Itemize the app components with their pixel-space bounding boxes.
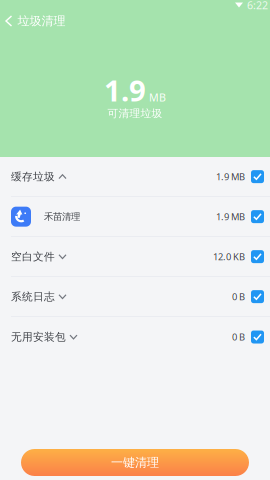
button[interactable]: 一键清理: [21, 449, 249, 476]
staticText: 垃圾清理: [17, 14, 65, 28]
staticText: 一键清理: [111, 455, 159, 470]
staticText: 可清理垃圾: [107, 107, 162, 120]
staticText: 1.9: [104, 70, 146, 109]
staticText: 1.9 MB: [216, 210, 245, 223]
staticText: 系统日志: [11, 290, 55, 303]
staticText: 空白文件: [11, 250, 55, 263]
staticText: 0 B: [232, 290, 245, 303]
button[interactable]: 垃圾清理: [0, 10, 74, 32]
staticText: 禾苗清理: [44, 211, 80, 222]
staticText: 1.9 MB: [216, 170, 245, 183]
button[interactable]: 禾苗清理: [0, 197, 270, 237]
button[interactable]: 无用安装包: [0, 317, 270, 357]
button[interactable]: 空白文件: [0, 237, 270, 277]
staticText: 0 B: [232, 331, 245, 343]
staticText: 无用安装包: [11, 330, 66, 343]
staticText: 缓存垃圾: [11, 170, 55, 183]
button[interactable]: 缓存垃圾: [0, 157, 270, 197]
button[interactable]: 系统日志: [0, 277, 270, 317]
staticText: MB: [149, 90, 166, 104]
staticText: 6:22: [247, 0, 268, 12]
staticText: 12.0 KB: [213, 250, 245, 263]
